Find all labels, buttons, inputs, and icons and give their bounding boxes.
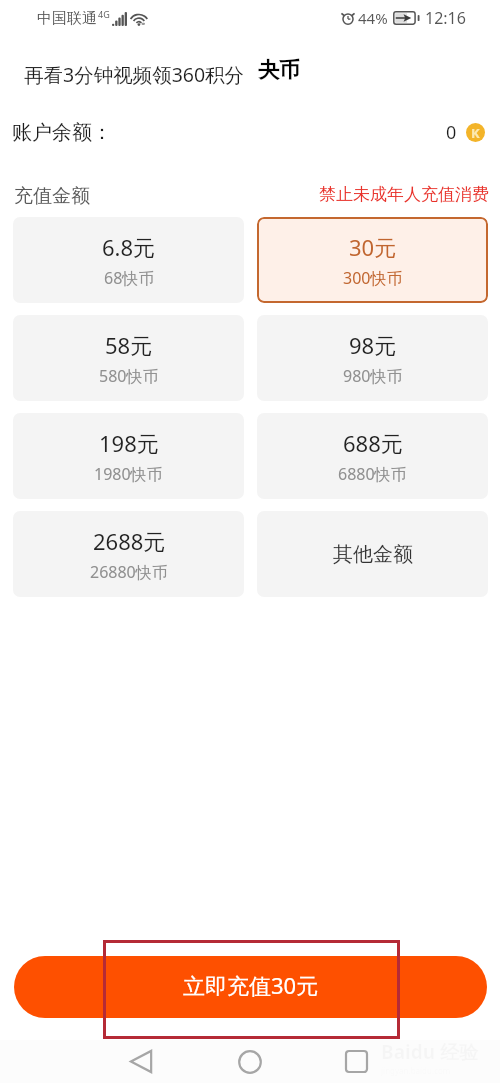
button[interactable]: 立即充值30元 — [14, 956, 487, 1018]
staticText: K — [471, 124, 480, 142]
button[interactable]: 198元 — [13, 413, 244, 499]
button[interactable]: 98元 — [257, 315, 488, 401]
staticText: 账户余额： — [12, 120, 112, 145]
staticText: 300快币 — [343, 267, 403, 289]
staticText: 禁止未成年人充值消费 — [319, 184, 489, 205]
staticText: 580快币 — [99, 365, 159, 387]
staticText: 其他金额 — [333, 542, 413, 567]
staticText: 2688元 — [93, 526, 166, 556]
staticText: 12:16 — [425, 7, 466, 29]
staticText: 688元 — [343, 428, 403, 458]
staticText: 1980快币 — [94, 463, 163, 485]
button[interactable]: 688元 — [257, 413, 488, 499]
staticText: 4G — [98, 8, 110, 20]
button[interactable]: 58元 — [13, 315, 244, 401]
staticText: 198元 — [99, 428, 159, 458]
staticText: 再看3分钟视频领360积分 — [24, 61, 245, 88]
staticText: 充值金额 — [14, 184, 90, 208]
button[interactable]: 30元 — [257, 217, 488, 303]
button[interactable]: Back — [111, 1040, 172, 1083]
staticText: 6.8元 — [102, 232, 156, 262]
staticText: 58元 — [105, 330, 153, 360]
staticText: 夬币 — [258, 57, 300, 83]
staticText: 44% — [358, 8, 388, 28]
button[interactable]: Home — [220, 1040, 280, 1083]
staticText: 980快币 — [343, 365, 403, 387]
staticText: 6880快币 — [338, 463, 407, 485]
button[interactable]: 6.8元 — [13, 217, 244, 303]
staticText: 立即充值30元 — [183, 970, 319, 1000]
button[interactable]: 其他金额 — [257, 511, 488, 597]
staticText: 0 — [446, 120, 457, 145]
staticText: 26880快币 — [90, 561, 168, 583]
staticText: 68快币 — [104, 267, 155, 289]
staticText: 中国联通 — [37, 9, 97, 28]
button[interactable]: 2688元 — [13, 511, 244, 597]
staticText: 98元 — [349, 330, 397, 360]
staticText: 30元 — [349, 232, 397, 262]
button[interactable]: Recents — [326, 1040, 386, 1083]
